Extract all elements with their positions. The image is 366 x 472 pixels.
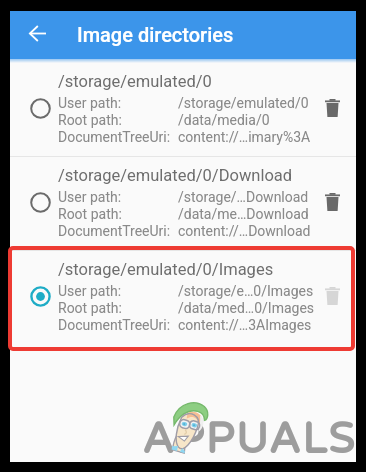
staticText: /data/med…0/Images: [178, 300, 315, 316]
staticText: Image directories: [77, 23, 234, 46]
staticText: User path:: [58, 283, 178, 299]
staticText: content://…Download: [178, 223, 311, 239]
staticText: User path:: [58, 95, 178, 111]
staticText: /storage/emulated/0: [178, 95, 309, 111]
staticText: DocumentTreeUri:: [58, 317, 178, 333]
staticText: /data/media/0: [178, 112, 270, 128]
staticText: DocumentTreeUri:: [58, 223, 178, 239]
staticText: /storage/emulated/0/Download: [58, 166, 293, 185]
staticText: Root path:: [58, 206, 178, 222]
staticText: /data/me…Download: [178, 206, 309, 222]
button[interactable]: /storage/emulated/0/Download: [10, 153, 356, 247]
button[interactable]: Navigate up: [19, 15, 55, 51]
staticText: /storage/emulated/0: [58, 72, 212, 91]
staticText: content://…3AImages: [178, 317, 312, 333]
staticText: /storage/…Download: [178, 189, 309, 205]
staticText: User path:: [58, 189, 178, 205]
staticText: /storage/emulated/0/Images: [58, 260, 274, 279]
button[interactable]: /storage/emulated/0: [10, 59, 356, 153]
staticText: APPUALS: [142, 414, 356, 465]
button[interactable]: Delete: [314, 278, 350, 314]
button[interactable]: /storage/emulated/0/Images: [10, 247, 356, 341]
staticText: Root path:: [58, 112, 178, 128]
staticText: Root path:: [58, 300, 178, 316]
staticText: /storage/e…0/Images: [178, 283, 314, 299]
staticText: DocumentTreeUri:: [58, 129, 178, 145]
staticText: content://…imary%3A: [178, 129, 311, 145]
button[interactable]: Delete: [314, 184, 350, 220]
button[interactable]: Delete: [314, 90, 350, 126]
